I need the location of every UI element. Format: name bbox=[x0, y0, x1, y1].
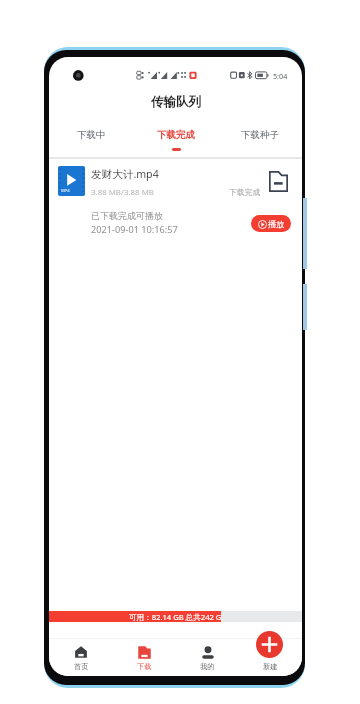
staticText: 5:04 bbox=[273, 71, 288, 81]
button[interactable]: MP4 bbox=[49, 157, 302, 249]
staticText: 已下载完成可播放 bbox=[91, 210, 163, 221]
button[interactable]: 下载种子 bbox=[218, 121, 302, 157]
staticText: 下载完成 bbox=[157, 129, 195, 141]
staticText: 新建 bbox=[263, 662, 278, 671]
button[interactable]: 下载中 bbox=[49, 121, 134, 157]
button[interactable]: Remove download bbox=[269, 171, 288, 192]
button[interactable]: 下载完成 bbox=[134, 121, 218, 157]
staticText: 传输队列 bbox=[151, 94, 201, 110]
staticText: 下载 bbox=[137, 662, 152, 671]
staticText: 我的 bbox=[200, 662, 215, 671]
staticText: 下载种子 bbox=[241, 129, 279, 141]
staticText: 下载完成 bbox=[229, 187, 261, 197]
staticText: 发财大计.mp4 bbox=[91, 167, 159, 181]
staticText: 可用：82.14 GB 总共242 G bbox=[129, 612, 222, 622]
staticText: 首页 bbox=[74, 662, 89, 671]
button[interactable]: 首页 bbox=[49, 638, 113, 676]
staticText: 播放 bbox=[268, 219, 285, 229]
staticText: 下载中 bbox=[77, 129, 106, 141]
button[interactable]: 新建 bbox=[256, 631, 283, 658]
button[interactable]: 我的 bbox=[176, 638, 239, 676]
staticText: MP4 bbox=[61, 188, 70, 194]
staticText: 3.88 MB/3.88 MB bbox=[91, 187, 154, 198]
button[interactable]: 下载 bbox=[113, 638, 176, 676]
button[interactable]: 播放 bbox=[251, 215, 291, 232]
staticText: 2021-09-01 10:16:57 bbox=[91, 223, 178, 236]
